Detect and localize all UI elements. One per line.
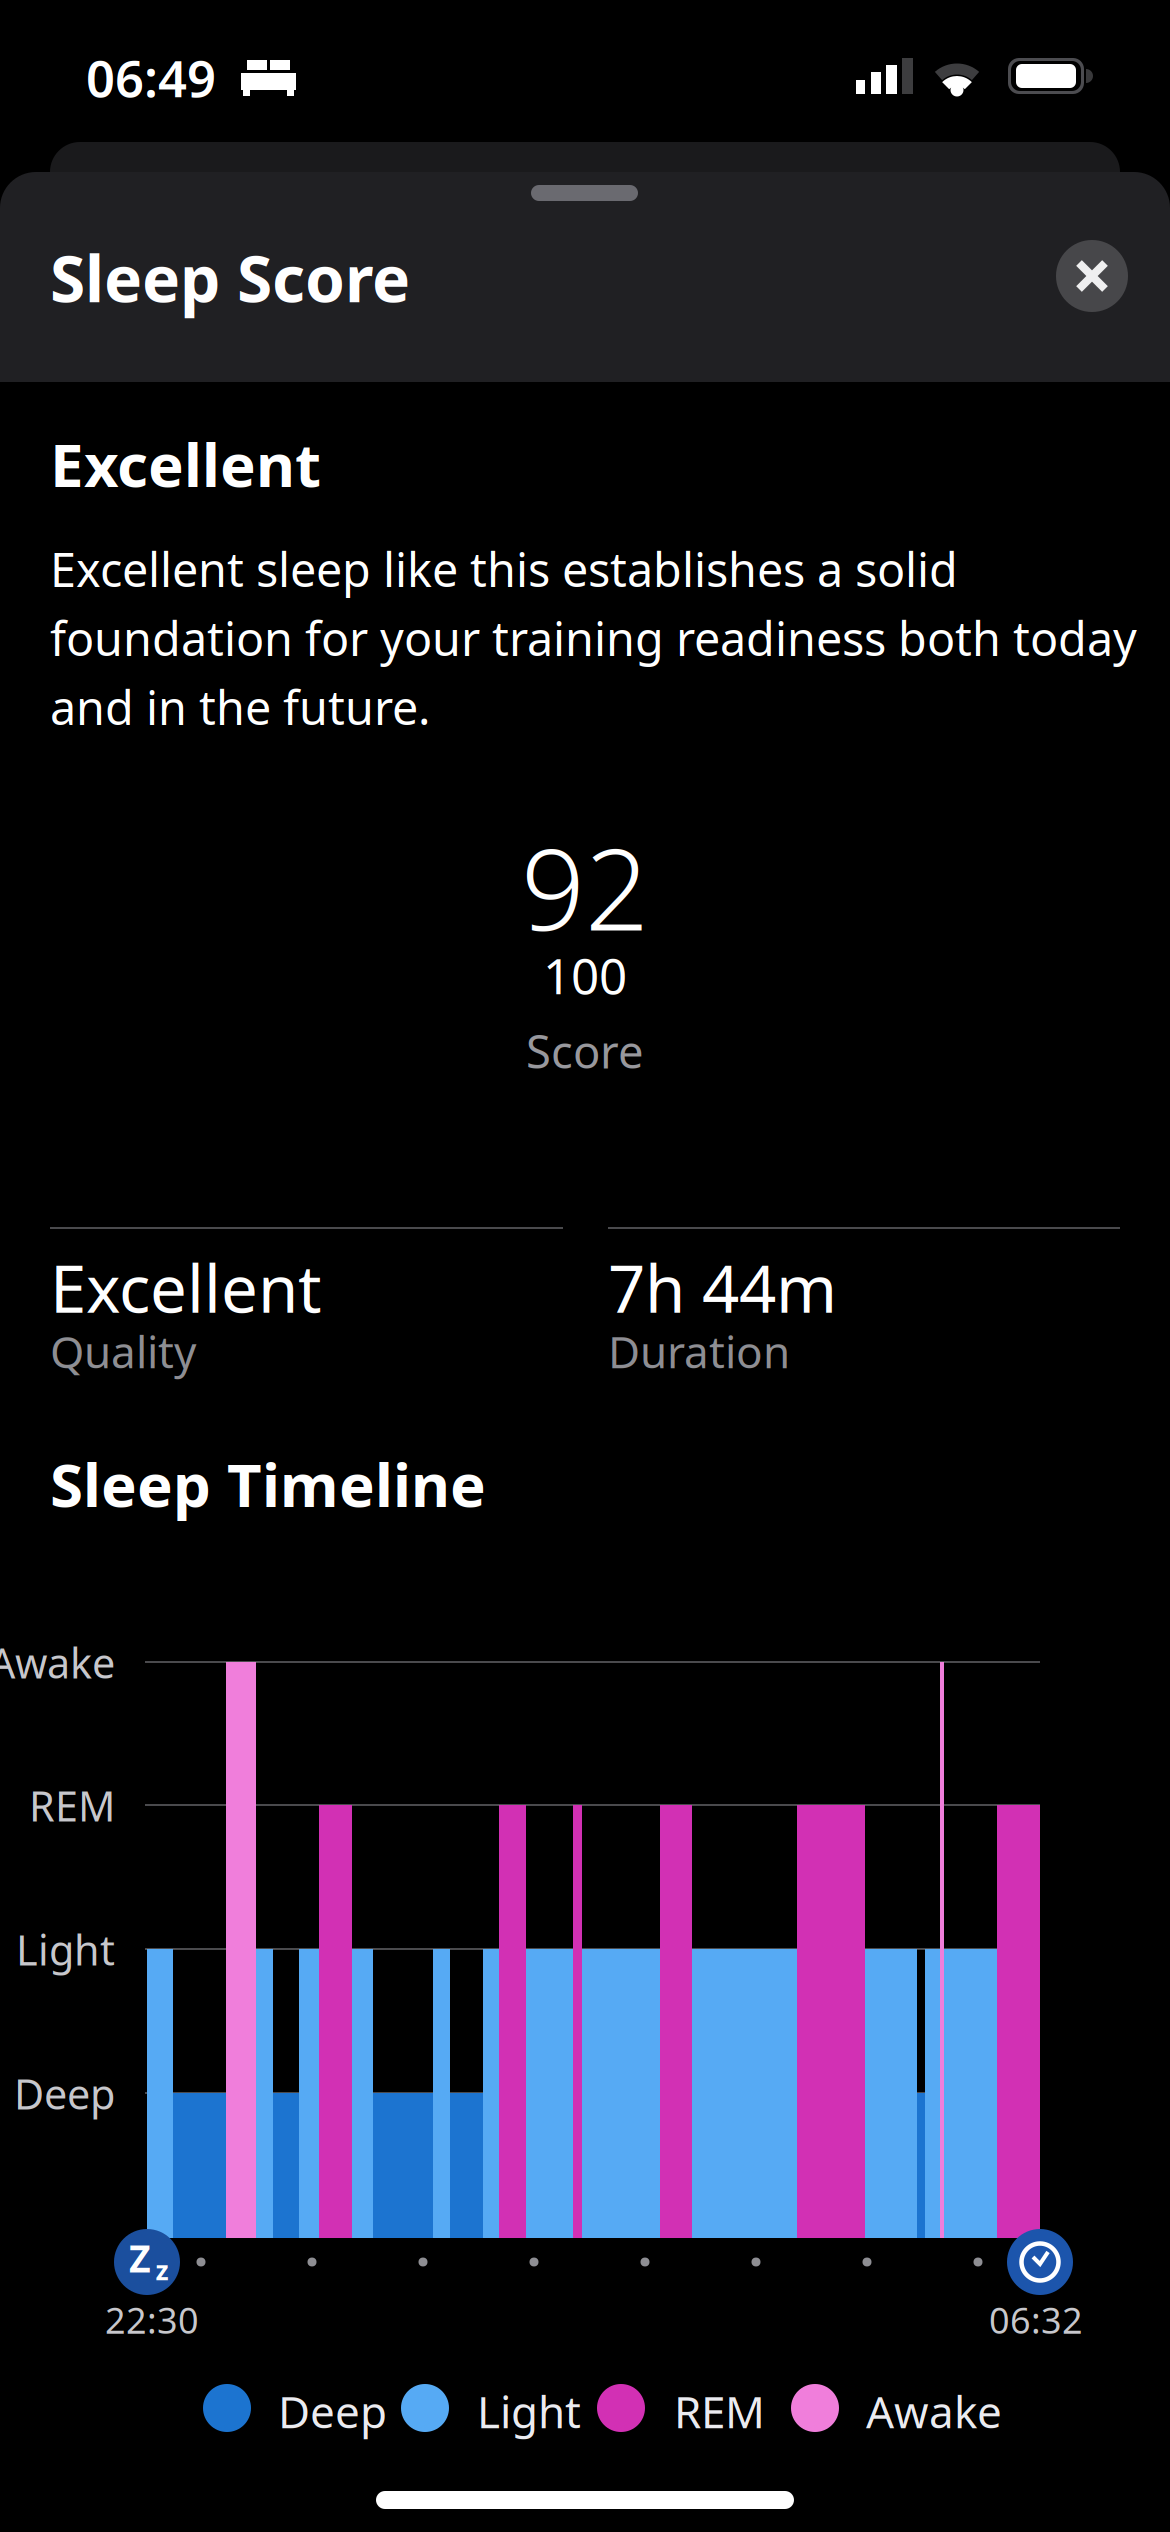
- staticText: Z: [129, 2233, 151, 2283]
- staticText: 100: [543, 942, 627, 1008]
- staticText: Light: [16, 1922, 115, 1977]
- staticText: 92: [521, 813, 649, 961]
- staticText: Light: [477, 2382, 581, 2440]
- staticText: Awake: [0, 1635, 115, 1690]
- staticText: 7h 44m: [608, 1244, 837, 1331]
- staticText: 06:32: [989, 2296, 1083, 2344]
- staticText: REM: [29, 1778, 115, 1833]
- staticText: Score: [526, 1021, 644, 1081]
- staticText: Quality: [50, 1322, 196, 1380]
- staticText: Excellent sleep like this establishes a …: [50, 538, 1137, 738]
- staticText: Sleep Timeline: [50, 1444, 486, 1524]
- staticText: Deep: [278, 2382, 387, 2440]
- staticText: Deep: [14, 2066, 115, 2121]
- staticText: Awake: [866, 2382, 1002, 2440]
- staticText: Excellent: [50, 424, 321, 504]
- staticText: z: [155, 2252, 168, 2288]
- staticText: 22:30: [105, 2296, 199, 2344]
- staticText: REM: [674, 2382, 765, 2440]
- staticText: Duration: [608, 1322, 790, 1380]
- staticText: Sleep Score: [50, 235, 410, 320]
- staticText: 06:49: [86, 44, 216, 111]
- staticText: Excellent: [50, 1244, 322, 1331]
- button[interactable]: Close: [1056, 240, 1128, 312]
